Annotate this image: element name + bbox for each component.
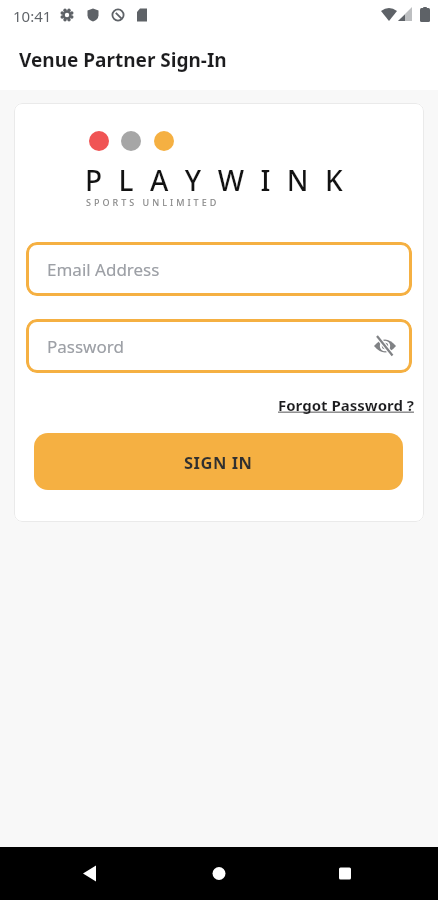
button[interactable]: Forgot Password ? [278, 395, 414, 415]
staticText: SIGN IN [184, 451, 253, 473]
button[interactable] [0, 847, 146, 900]
staticText: P L A Y W I N K [85, 161, 348, 199]
button[interactable]: Password [26, 319, 412, 373]
staticText: Venue Partner Sign-In [19, 47, 227, 73]
staticText: SPORTS UNLIMITED [86, 196, 220, 208]
staticText: Password [47, 335, 124, 358]
button[interactable] [372, 333, 398, 359]
button[interactable] [292, 847, 438, 900]
button[interactable]: SIGN IN [34, 433, 403, 490]
staticText: Email Address [47, 258, 160, 281]
button[interactable]: Email Address [26, 242, 412, 296]
button[interactable] [146, 847, 292, 900]
staticText: 10:41 [13, 6, 52, 26]
